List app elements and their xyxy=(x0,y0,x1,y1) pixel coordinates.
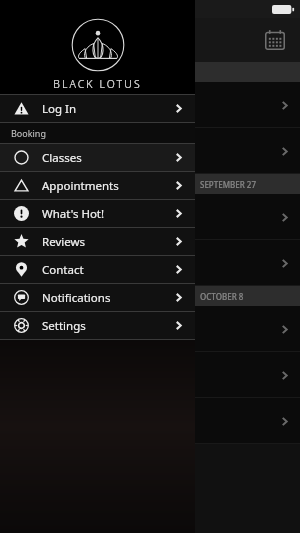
staticText: Reviews xyxy=(42,234,86,250)
staticText: BLACK LOTUS xyxy=(53,77,142,91)
staticText: OCTOBER 8 xyxy=(200,291,244,302)
button[interactable]: Calendar xyxy=(264,29,286,51)
staticText: Appointments xyxy=(42,178,119,194)
button[interactable]: Notifications xyxy=(0,284,195,311)
staticText: Booking xyxy=(11,127,46,139)
staticText: What's Hot! xyxy=(42,206,105,222)
button[interactable]: Contact xyxy=(0,256,195,283)
staticText: Classes xyxy=(42,150,82,166)
staticText: Log In xyxy=(42,101,77,117)
button[interactable]: Classes xyxy=(0,144,195,171)
button[interactable]: Reviews xyxy=(0,228,195,255)
staticText: SEPTEMBER 27 xyxy=(200,179,257,190)
button[interactable]: Settings xyxy=(0,312,195,339)
staticText: Contact xyxy=(42,262,84,278)
button[interactable]: Appointments xyxy=(0,172,195,199)
button[interactable]: Log In xyxy=(0,95,195,122)
staticText: Notifications xyxy=(42,290,111,306)
staticText: Settings xyxy=(42,318,86,334)
button[interactable]: What's Hot! xyxy=(0,200,195,227)
